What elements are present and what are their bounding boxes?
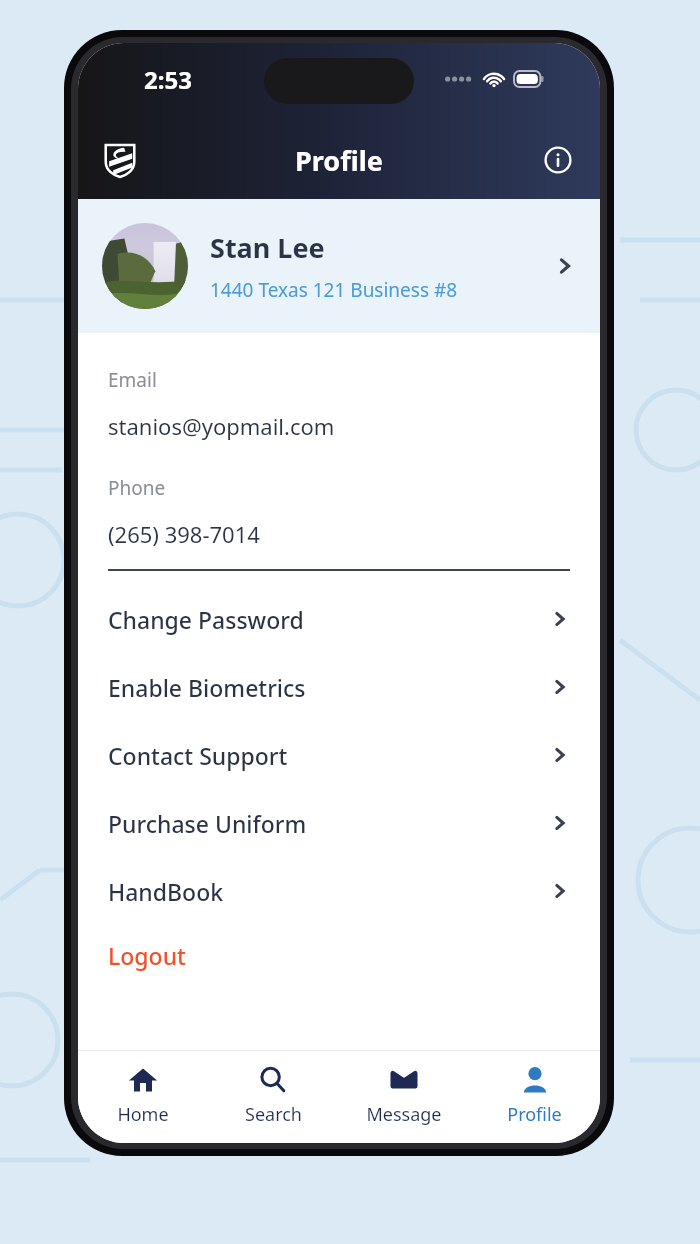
staticText: (265) 398-7014 [108,519,260,549]
staticText: Purchase Uniform [108,808,307,839]
staticText: Message [366,1102,442,1127]
button[interactable]: HandBook [78,857,600,925]
staticText: Contact Support [108,740,288,771]
staticText: HandBook [108,876,224,907]
staticText: Email [108,367,157,393]
staticText: Change Password [108,604,304,635]
button[interactable]: Profile [469,1051,600,1143]
button[interactable]: Contact Support [78,721,600,789]
staticText: Enable Biometrics [108,672,306,703]
button[interactable]: Home [78,1051,208,1143]
button[interactable]: Stan Lee [78,199,600,333]
button[interactable]: Information [534,136,582,184]
staticText: Search [245,1102,302,1127]
staticText: 2:53 [144,63,192,96]
button[interactable]: Logo [96,136,144,184]
button[interactable]: Logout [78,925,600,985]
staticText: Home [117,1102,169,1127]
button[interactable]: Search [208,1051,338,1143]
staticText: Logout [108,940,186,971]
staticText: Phone [108,475,166,501]
staticText: stanios@yopmail.com [108,411,335,441]
staticText: Profile [295,142,383,179]
button[interactable]: Enable Biometrics [78,653,600,721]
staticText: 1440 Texas 121 Business #8 [210,277,458,303]
staticText: Profile [507,1102,562,1127]
staticText: Stan Lee [210,229,325,266]
button[interactable]: Change Password [78,585,600,653]
button[interactable]: Purchase Uniform [78,789,600,857]
button[interactable]: Message [338,1051,469,1143]
